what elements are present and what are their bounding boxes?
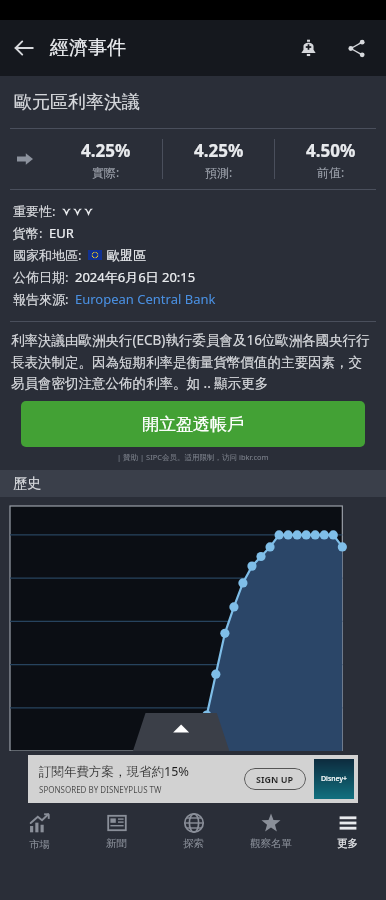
- button[interactable]: 新聞: [78, 806, 155, 858]
- button[interactable]: Add alert: [284, 24, 332, 72]
- staticText: 歷史: [13, 475, 41, 493]
- staticText: 歐元區利率決議: [14, 91, 140, 114]
- button[interactable]: Back: [0, 24, 48, 72]
- staticText: 利率決議由歐洲央行(ECB)執行委員會及16位歐洲各國央行行長表決制定。因為短期…: [11, 331, 375, 392]
- staticText: 更多: [337, 837, 358, 850]
- staticText: 預測:: [205, 164, 233, 180]
- staticText: European Central Bank: [75, 290, 216, 308]
- button[interactable]: 觀察名單: [232, 806, 309, 858]
- staticText: 4.25%: [194, 139, 244, 162]
- staticText: 報告來源:: [13, 290, 69, 308]
- staticText: 重要性:: [13, 202, 56, 220]
- staticText: 新聞: [106, 837, 127, 850]
- button[interactable]: European Central Bank: [75, 290, 216, 308]
- staticText: SIGN UP: [256, 773, 294, 785]
- button[interactable]: 開立盈透帳戶: [21, 401, 365, 447]
- staticText: 訂閱年費方案，現省約15%: [39, 763, 189, 780]
- staticText: 貨幣:: [13, 224, 43, 242]
- staticText: 觀察名單: [250, 837, 292, 850]
- staticText: | 贊助 | SIPC会员。适用限制，访问 ibkr.com: [117, 452, 269, 462]
- staticText: Disney+: [321, 774, 347, 784]
- button[interactable]: SIGN UP: [244, 768, 306, 790]
- staticText: 實際:: [92, 164, 120, 180]
- staticText: 4.25%: [81, 139, 131, 162]
- button[interactable]: Share: [332, 24, 380, 72]
- button[interactable]: 市場: [0, 806, 78, 858]
- staticText: 國家和地區:: [13, 246, 82, 264]
- button[interactable]: 更多: [309, 806, 386, 858]
- staticText: 探索: [183, 837, 204, 850]
- staticText: EUR: [49, 224, 74, 242]
- button[interactable]: 訂閱年費方案，現省約15%: [28, 755, 358, 803]
- staticText: 開立盈透帳戶: [142, 414, 244, 435]
- button[interactable]: 探索: [155, 806, 232, 858]
- staticText: 歐盟區: [107, 247, 146, 263]
- staticText: 2024年6月6日 20:15: [75, 268, 196, 286]
- staticText: 公佈日期:: [13, 268, 69, 286]
- staticText: 前值:: [317, 164, 345, 180]
- staticText: 市場: [29, 838, 50, 851]
- staticText: 4.50%: [306, 139, 356, 162]
- staticText: SPONSORED BY DISNEYPLUS TW: [39, 784, 162, 795]
- staticText: 經濟事件: [50, 36, 126, 60]
